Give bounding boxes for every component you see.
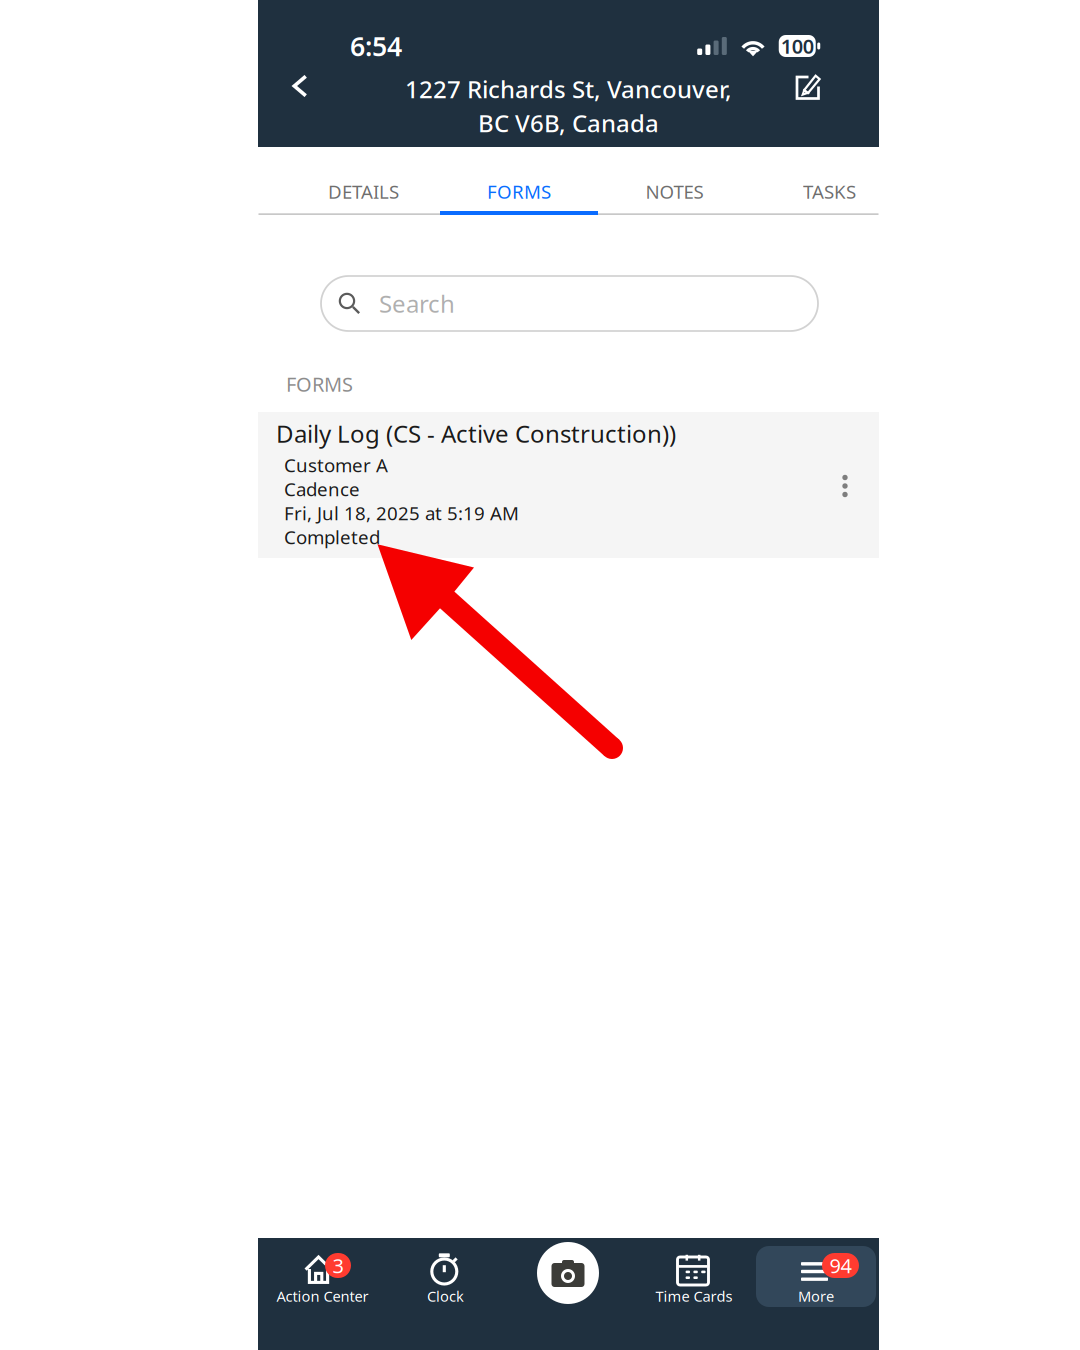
- button[interactable]: Back: [271, 57, 329, 115]
- staticText: More: [798, 1286, 834, 1306]
- staticText: 6:54: [350, 28, 402, 64]
- staticText: DETAILS: [328, 179, 399, 204]
- button[interactable]: Daily Log (CS - Active Construction)): [258, 412, 879, 558]
- button[interactable]: TASKS: [752, 147, 907, 215]
- button[interactable]: NOTES: [597, 147, 752, 215]
- staticText: Daily Log (CS - Active Construction)): [276, 418, 676, 449]
- staticText: 94: [829, 1252, 851, 1279]
- staticText: 1227 Richards St, Vancouver,: [405, 73, 732, 105]
- staticText: Search: [379, 288, 455, 319]
- button[interactable]: DETAILS: [286, 147, 441, 215]
- staticText: FORMS: [487, 179, 551, 204]
- staticText: Fri, Jul 18, 2025 at 5:19 AM: [284, 501, 519, 525]
- staticText: Action Center: [276, 1286, 368, 1306]
- staticText: FORMS: [286, 371, 353, 397]
- staticText: Cadence: [284, 477, 360, 501]
- staticText: NOTES: [645, 179, 703, 204]
- staticText: Customer A: [284, 453, 388, 477]
- staticText: 3: [332, 1252, 343, 1279]
- staticText: Clock: [427, 1286, 464, 1306]
- button[interactable]: Camera: [537, 1242, 599, 1304]
- button[interactable]: FORMS: [441, 147, 597, 215]
- button[interactable]: Search: [321, 276, 818, 331]
- staticText: 100: [781, 33, 814, 59]
- staticText: TASKS: [803, 179, 856, 204]
- staticText: Time Cards: [655, 1286, 732, 1306]
- staticText: BC V6B, Canada: [478, 107, 659, 139]
- button[interactable]: [756, 1246, 876, 1307]
- button[interactable]: Edit: [780, 57, 838, 115]
- staticText: Completed: [284, 525, 380, 549]
